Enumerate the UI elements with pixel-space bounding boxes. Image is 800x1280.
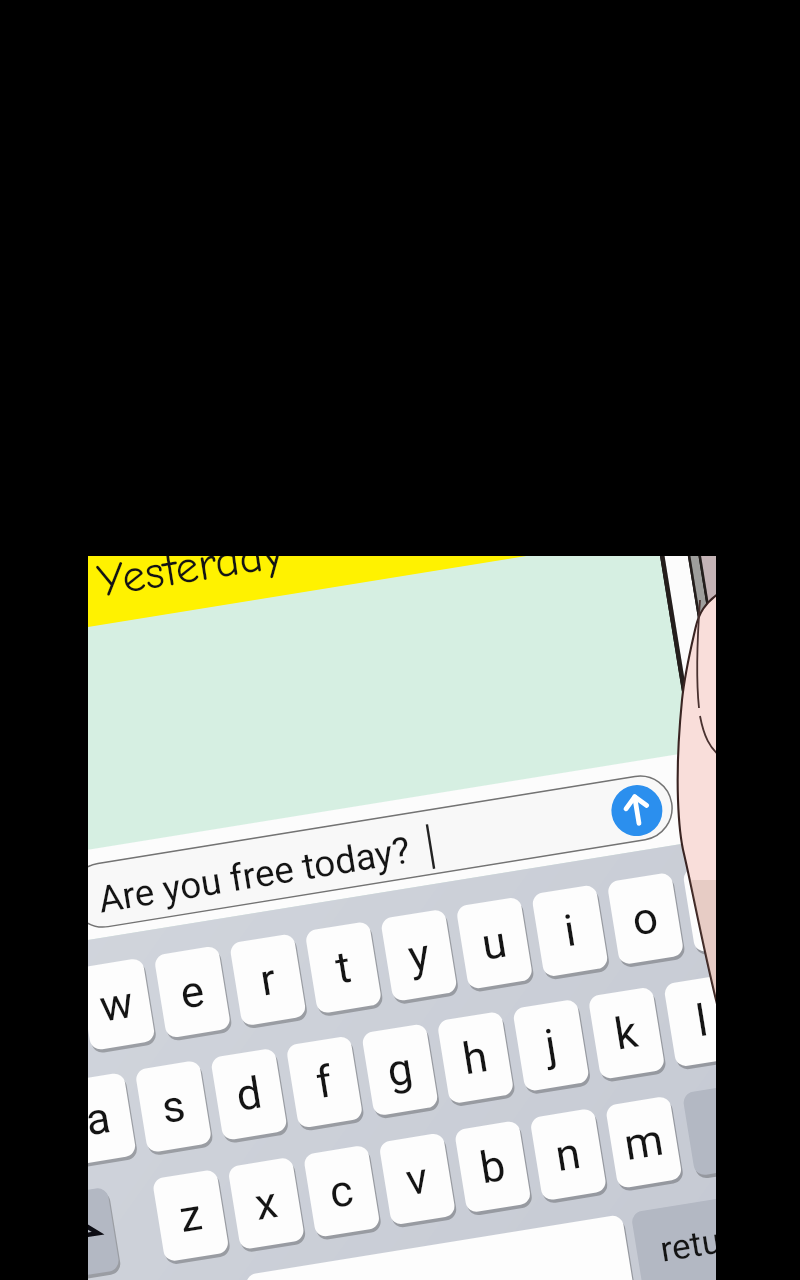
button[interactable]: Hand holding a phone typing a message: [0, 0, 800, 1280]
